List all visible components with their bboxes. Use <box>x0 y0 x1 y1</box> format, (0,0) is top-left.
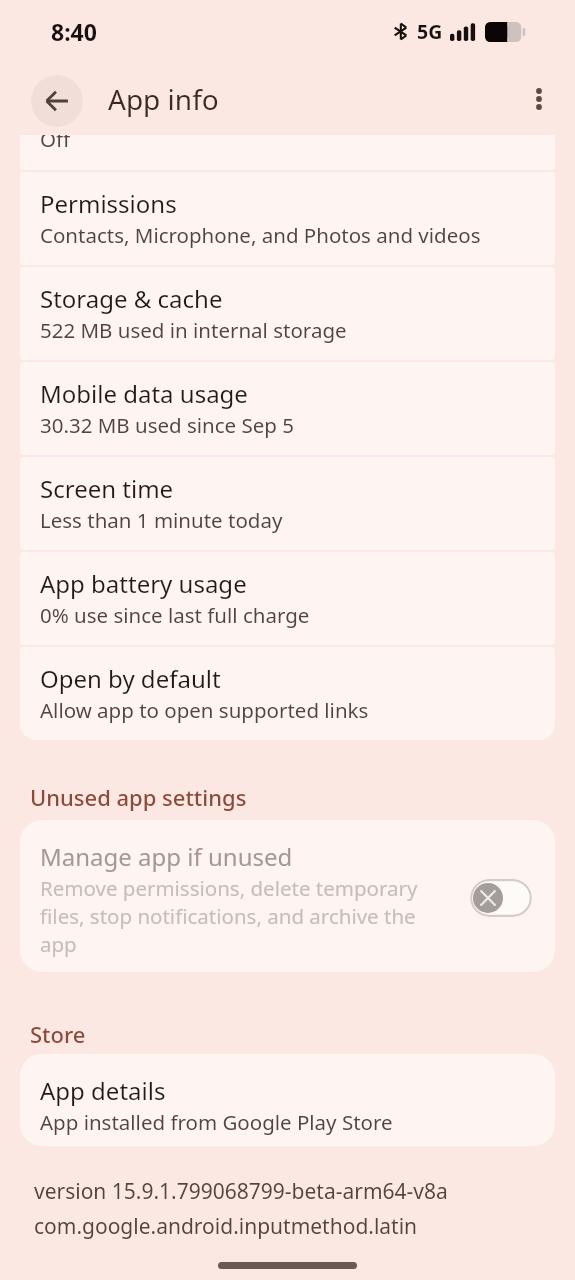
staticText: 522 MB used in internal storage <box>40 316 347 344</box>
staticText: Manage app if unused <box>40 840 293 873</box>
button[interactable]: Mobile data usage <box>20 362 555 455</box>
staticText: Permissions <box>40 187 177 220</box>
button[interactable]: App battery usage <box>20 552 555 645</box>
button[interactable]: Permissions <box>20 172 555 265</box>
staticText: 8:40 <box>51 16 97 47</box>
staticText: Contacts, Microphone, and Photos and vid… <box>40 221 481 249</box>
staticText: com.google.android.inputmethod.latin <box>34 1212 418 1241</box>
button[interactable]: More options <box>517 77 561 121</box>
staticText: App battery usage <box>40 567 247 600</box>
staticText: App installed from Google Play Store <box>40 1108 393 1136</box>
staticText: Off <box>40 135 71 153</box>
staticText: Storage & cache <box>40 282 223 315</box>
staticText: App info <box>108 80 219 118</box>
staticText: Unused app settings <box>30 782 247 812</box>
staticText: Allow app to open supported links <box>40 696 369 724</box>
button[interactable]: Manage app if unused <box>20 820 555 972</box>
staticText: Screen time <box>40 472 174 505</box>
button[interactable]: App details <box>20 1054 555 1146</box>
staticText: Mobile data usage <box>40 377 248 410</box>
button[interactable]: Back <box>31 75 83 127</box>
staticText: version 15.9.1.799068799-beta-arm64-v8a <box>34 1177 448 1206</box>
button[interactable]: Manage app if unused toggle <box>470 879 532 917</box>
button[interactable]: Open by default <box>20 647 555 740</box>
staticText: App details <box>40 1074 166 1107</box>
button[interactable]: Storage & cache <box>20 267 555 360</box>
button[interactable]: Off <box>20 135 555 170</box>
staticText: 0% use since last full charge <box>40 601 310 629</box>
staticText: 5G <box>417 18 443 45</box>
staticText: Store <box>30 1019 86 1049</box>
button[interactable]: Screen time <box>20 457 555 550</box>
staticText: Remove permissions, delete temporary fil… <box>40 874 425 958</box>
staticText: 30.32 MB used since Sep 5 <box>40 411 294 439</box>
staticText: Open by default <box>40 662 221 695</box>
staticText: Less than 1 minute today <box>40 506 283 534</box>
